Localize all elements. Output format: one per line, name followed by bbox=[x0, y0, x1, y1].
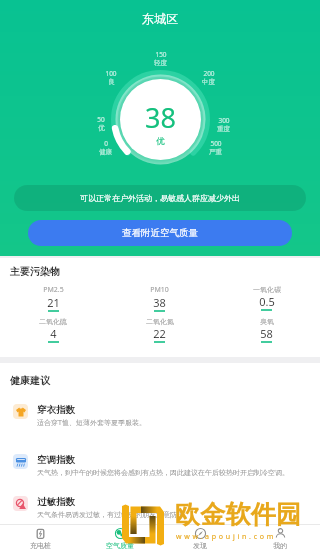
staticText: 22 bbox=[153, 326, 166, 341]
other: 空气质量 bbox=[115, 528, 126, 539]
staticText: 严重 bbox=[209, 148, 222, 156]
staticText: 58 bbox=[260, 326, 273, 341]
staticText: 二氧化硫 bbox=[39, 317, 67, 326]
other: 充电桩 bbox=[35, 528, 46, 539]
staticText: 4 bbox=[50, 326, 57, 341]
staticText: 查看附近空气质量 bbox=[122, 227, 198, 239]
staticText: 优 bbox=[156, 136, 165, 147]
staticText: 中度 bbox=[202, 78, 215, 86]
staticText: PM10 bbox=[150, 285, 169, 295]
staticText: PM2.5 bbox=[43, 285, 64, 295]
button[interactable]: 充电桩 bbox=[0, 524, 80, 554]
staticText: 38 bbox=[153, 295, 166, 310]
button[interactable]: 穿衣指数 bbox=[13, 404, 307, 428]
staticText: 过敏指数 bbox=[37, 496, 75, 508]
other: 发现 bbox=[195, 528, 206, 539]
staticText: 轻度 bbox=[154, 59, 167, 67]
staticText: 天气条件易诱发过敏，有过敏史的朋友注意防护。 bbox=[37, 510, 191, 519]
staticText: www.apoujin.com bbox=[176, 532, 277, 542]
staticText: 0.5 bbox=[259, 294, 275, 309]
button[interactable]: 我的 bbox=[240, 524, 320, 554]
staticText: 我的 bbox=[273, 541, 287, 550]
staticText: 150 bbox=[155, 50, 167, 59]
staticText: 可以正常在户外活动，易敏感人群应减少外出 bbox=[80, 193, 240, 203]
staticText: 200 bbox=[203, 69, 215, 78]
staticText: 健康 bbox=[99, 148, 112, 156]
other: 我的 bbox=[275, 528, 286, 539]
staticText: 空气质量 bbox=[106, 541, 134, 550]
staticText: 充电桩 bbox=[30, 541, 51, 550]
button[interactable]: 发现 bbox=[160, 524, 240, 554]
button[interactable]: 查看附近空气质量 bbox=[28, 220, 292, 246]
staticText: 38 bbox=[145, 99, 176, 136]
staticText: 臭氧 bbox=[260, 317, 274, 326]
staticText: 良 bbox=[108, 78, 115, 86]
staticText: 0 bbox=[104, 139, 108, 148]
staticText: 一氧化碳 bbox=[253, 285, 281, 294]
staticText: 21 bbox=[47, 295, 60, 310]
staticText: 欧金软件园 bbox=[175, 499, 301, 530]
staticText: 100 bbox=[105, 69, 117, 78]
staticText: 穿衣指数 bbox=[37, 404, 75, 416]
staticText: 适合穿T恤、短薄外套等夏季服装。 bbox=[37, 418, 146, 428]
staticText: 重度 bbox=[217, 125, 230, 133]
staticText: 空调指数 bbox=[37, 454, 75, 466]
button[interactable]: 过敏指数 bbox=[13, 496, 307, 519]
staticText: 主要污染物 bbox=[10, 265, 60, 278]
button[interactable]: 空调指数 bbox=[13, 454, 307, 477]
button[interactable]: 空气质量 bbox=[80, 524, 160, 554]
staticText: 二氧化氮 bbox=[146, 317, 174, 326]
staticText: 发现 bbox=[193, 541, 207, 550]
staticText: 50 bbox=[97, 115, 105, 124]
staticText: 健康建议 bbox=[10, 374, 50, 387]
staticText: 500 bbox=[210, 139, 222, 148]
button[interactable]: 可以正常在户外活动，易敏感人群应减少外出 bbox=[14, 185, 306, 211]
staticText: 天气热，到中午的时候您将会感到有点热，因此建议在午后较热时开启制冷空调。 bbox=[37, 468, 289, 477]
staticText: 300 bbox=[218, 116, 230, 125]
staticText: 东城区 bbox=[142, 11, 178, 26]
staticText: 优 bbox=[98, 124, 105, 132]
